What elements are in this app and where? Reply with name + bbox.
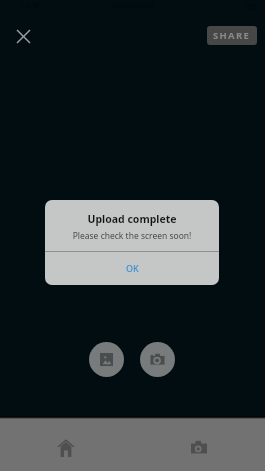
button[interactable]: Gallery bbox=[89, 342, 124, 377]
button[interactable]: Home bbox=[0, 419, 132, 471]
staticText: Please check the screen soon! bbox=[45, 230, 219, 242]
button[interactable]: Close bbox=[11, 24, 36, 49]
staticText: OK bbox=[126, 262, 139, 274]
button[interactable]: Camera bbox=[140, 342, 175, 377]
button[interactable]: SHARE bbox=[207, 26, 257, 45]
staticText: Upload complete bbox=[45, 212, 219, 226]
button[interactable]: Camera bbox=[132, 419, 265, 471]
button[interactable]: OK bbox=[45, 252, 219, 285]
staticText: SHARE bbox=[213, 29, 251, 42]
